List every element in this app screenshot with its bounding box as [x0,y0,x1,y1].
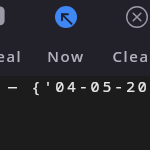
button[interactable]: Reveal [0,6,5,25]
staticText: Reveal [0,46,39,66]
staticText: — {'04-05-20 [8,76,150,96]
button[interactable]: Clear [126,6,148,28]
staticText: Now [21,46,111,66]
button[interactable]: Now [55,6,77,28]
staticText: Clear [90,46,150,66]
